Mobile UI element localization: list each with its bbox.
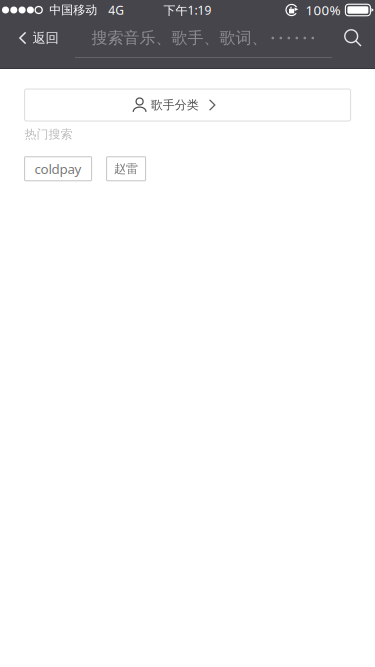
button[interactable]: 返回: [0, 20, 66, 56]
staticText: 热门搜索: [25, 127, 73, 142]
button[interactable]: coldpay: [25, 157, 92, 181]
staticText: 下午1:19: [163, 2, 211, 18]
button[interactable]: 赵雷: [107, 157, 146, 181]
staticText: 歌手分类: [151, 98, 199, 112]
staticText: coldpay: [35, 160, 82, 178]
staticText: 4G: [108, 2, 124, 18]
staticText: 赵雷: [114, 161, 138, 176]
button[interactable]: 搜索: [332, 20, 375, 56]
staticText: 中国移动: [49, 3, 97, 17]
staticText: 搜索音乐、歌手、歌词、: [91, 28, 267, 48]
staticText: 100%: [305, 1, 340, 19]
staticText: 返回: [32, 30, 58, 46]
button[interactable]: 歌手分类: [25, 89, 351, 121]
button[interactable]: 搜索音乐、歌手、歌词、: [66, 20, 332, 56]
